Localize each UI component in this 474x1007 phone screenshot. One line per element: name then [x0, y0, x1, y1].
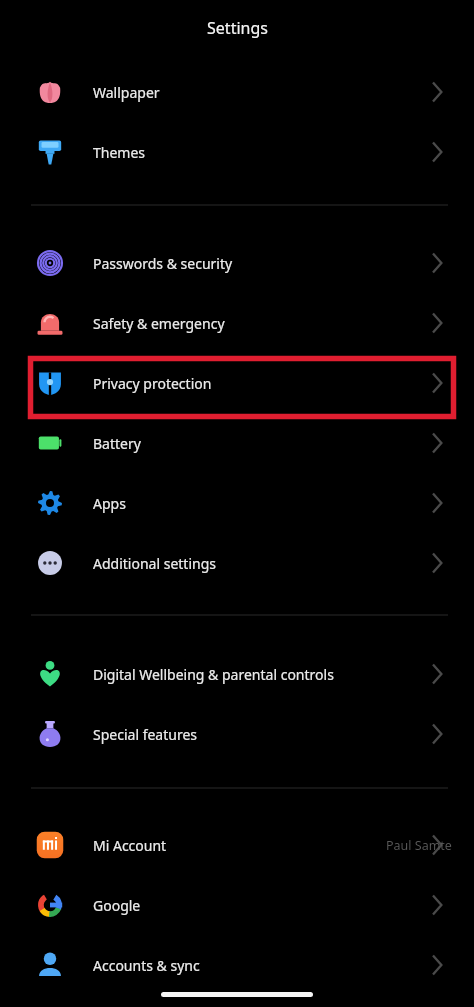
staticText: Privacy protection [93, 374, 212, 393]
button[interactable]: Safety & emergency [0, 293, 474, 353]
staticText: Passwords & security [93, 254, 233, 273]
staticText: Google [93, 896, 141, 915]
button[interactable]: Apps [0, 473, 474, 533]
staticText: Wallpaper [93, 83, 160, 102]
staticText: Themes [93, 143, 146, 162]
button[interactable]: Accounts & sync [0, 935, 474, 995]
button[interactable]: Wallpaper [0, 62, 474, 122]
staticText: Battery [93, 434, 141, 453]
button[interactable]: Digital Wellbeing & parental controls [0, 644, 474, 704]
staticText: Additional settings [93, 554, 216, 573]
button[interactable]: Battery [0, 413, 474, 473]
staticText: Digital Wellbeing & parental controls [93, 665, 334, 684]
staticText: Paul Samte [386, 837, 452, 854]
button[interactable]: Themes [0, 122, 474, 182]
staticText: Accounts & sync [93, 956, 200, 975]
button[interactable]: Google [0, 875, 474, 935]
button[interactable]: Mi Account [0, 815, 474, 875]
staticText: Mi Account [93, 836, 167, 855]
button[interactable]: Passwords & security [0, 233, 474, 293]
staticText: Safety & emergency [93, 314, 225, 333]
button[interactable]: Privacy protection [0, 353, 474, 413]
staticText: Special features [93, 725, 198, 744]
button[interactable]: Special features [0, 704, 474, 764]
staticText: Settings [207, 17, 268, 39]
button[interactable]: Additional settings [0, 533, 474, 593]
other: Privacy protection highlight [28, 356, 456, 419]
staticText: Apps [93, 494, 126, 513]
